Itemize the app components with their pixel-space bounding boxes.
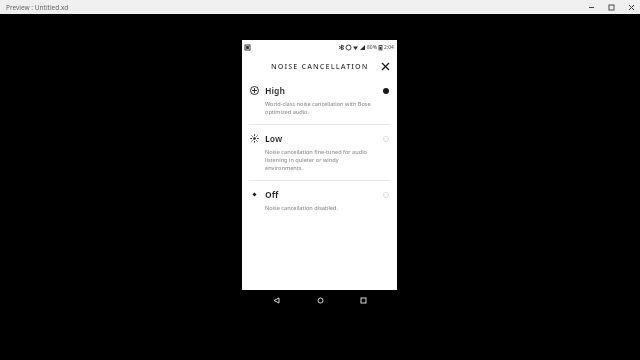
staticText: 2:04	[384, 44, 394, 51]
staticText: High	[265, 85, 285, 97]
staticText: World-class noise cancellation with Bose…	[265, 100, 377, 116]
button[interactable]: Low	[242, 125, 397, 180]
button[interactable]: Maximize	[606, 2, 616, 12]
staticText: Preview : Untitled.xd	[6, 3, 69, 12]
button[interactable]: Minimize	[586, 2, 596, 12]
button[interactable]: Off	[242, 181, 397, 220]
staticText: Off	[265, 189, 279, 201]
button[interactable]: Back	[267, 291, 285, 309]
button[interactable]: Close	[626, 2, 636, 12]
staticText: Low	[265, 133, 283, 145]
button[interactable]: Close	[378, 59, 392, 73]
staticText: Noise cancellation fine-tuned for audio …	[265, 148, 377, 172]
staticText: Noise cancellation disabled.	[265, 204, 338, 212]
button[interactable]: High	[242, 77, 397, 124]
staticText: 80%	[367, 44, 377, 51]
button[interactable]: Recents	[354, 291, 372, 309]
button[interactable]: Home	[311, 291, 329, 309]
staticText: NOISE CANCELLATION	[271, 61, 369, 71]
